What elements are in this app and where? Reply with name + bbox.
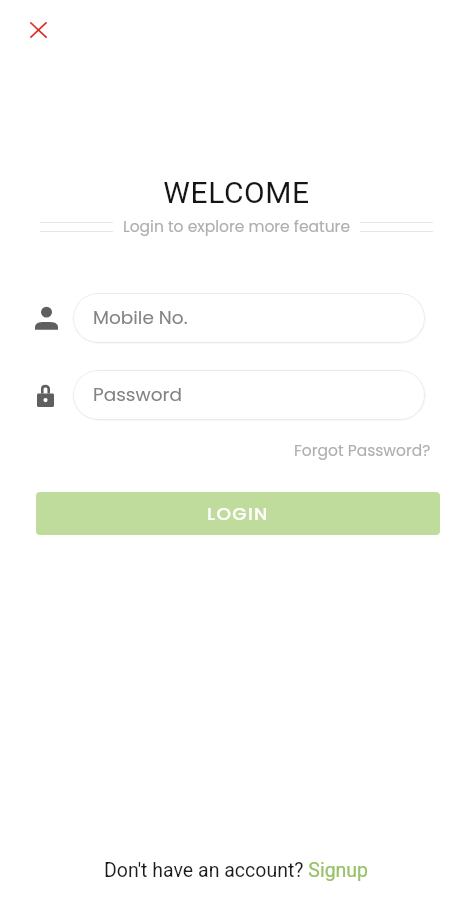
staticText: Forgot Password? [294, 440, 431, 462]
staticText: LOGIN [207, 501, 269, 527]
button[interactable]: Close [21, 13, 55, 47]
staticText: WELCOME [0, 175, 473, 210]
button[interactable]: Forgot Password? [294, 440, 431, 462]
staticText: Mobile No. [93, 305, 188, 331]
staticText: Password [93, 382, 182, 408]
button[interactable]: Don't have an account? Signup [104, 859, 369, 882]
button[interactable]: LOGIN [36, 492, 440, 535]
button[interactable]: Mobile No. [73, 293, 425, 343]
staticText: Login to explore more feature [123, 216, 350, 238]
button[interactable]: Password [73, 370, 425, 420]
